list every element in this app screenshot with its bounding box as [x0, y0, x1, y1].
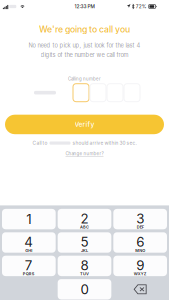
button[interactable]: Verify [5, 115, 164, 134]
staticText: Verify [74, 120, 94, 128]
staticText: 7 [25, 257, 33, 273]
staticText: No need to pick up, just look for the la… [28, 42, 140, 49]
staticText: should arrive within 30 sec. [72, 140, 136, 146]
staticText: 3 [136, 210, 144, 227]
staticText: ABC [80, 225, 89, 229]
staticText: WXYZ [134, 271, 147, 276]
staticText: DEF [137, 225, 144, 229]
staticText: 0 [80, 281, 88, 297]
staticText: 72% [136, 4, 147, 9]
button[interactable]: 2 [58, 209, 111, 229]
button[interactable]: 8 [58, 256, 111, 276]
staticText: We're going to call you [39, 24, 130, 34]
staticText: 8 [80, 257, 88, 273]
button[interactable]: 4 [2, 232, 56, 253]
staticText: 5 [80, 234, 88, 250]
staticText: JKL [81, 248, 88, 253]
staticText: Calling number [68, 76, 101, 82]
staticText: 9 [136, 257, 144, 273]
staticText: PQRS [23, 271, 35, 276]
staticText: MNO [135, 248, 145, 253]
button[interactable]: 0 [58, 279, 111, 299]
button[interactable]: 1 [2, 209, 56, 229]
staticText: Call to [32, 140, 47, 146]
button[interactable]: 3 [113, 209, 167, 229]
button[interactable]: 5 [58, 232, 111, 253]
staticText: 1 [26, 211, 31, 227]
button[interactable]: 9 [113, 256, 167, 276]
staticText: TUV [80, 271, 89, 276]
button[interactable]: Delete [113, 279, 167, 299]
staticText: 2 [80, 210, 88, 227]
button[interactable]: 6 [113, 232, 167, 253]
staticText: 4 [24, 234, 33, 250]
staticText: 6 [136, 234, 144, 250]
button[interactable]: Change number? [65, 151, 103, 156]
staticText: Change number? [65, 151, 103, 156]
staticText: GHI [25, 248, 32, 253]
staticText: 12:33 PM [74, 4, 94, 9]
staticText: digits of the number we call from [40, 51, 128, 58]
button[interactable]: 7 [2, 256, 56, 276]
